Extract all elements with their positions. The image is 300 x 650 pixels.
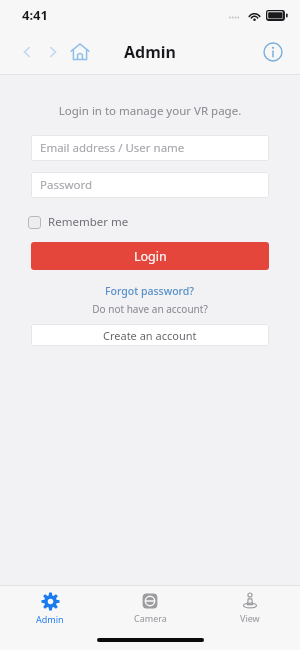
button[interactable]: View	[200, 592, 300, 624]
staticText: Create an account	[103, 328, 197, 343]
staticText: Login in to manage your VR page.	[0, 103, 300, 119]
staticText: Remember me	[48, 214, 129, 230]
staticText: Login	[134, 248, 167, 265]
staticText: Camera	[134, 612, 167, 624]
button[interactable]: Password	[31, 172, 269, 198]
button[interactable]: Back	[14, 39, 40, 65]
button[interactable]: Remember me	[28, 214, 129, 230]
button[interactable]: Admin	[0, 592, 100, 625]
button[interactable]: Info	[260, 39, 286, 65]
button[interactable]: Forward	[40, 39, 66, 65]
staticText: Do not have an account?	[0, 302, 300, 316]
button[interactable]: Create an account	[31, 324, 269, 346]
button[interactable]: Login	[31, 242, 269, 270]
staticText: View	[240, 612, 260, 624]
staticText: 4:41	[22, 6, 48, 24]
staticText: Email address / User name	[40, 140, 185, 156]
staticText: Forgot password?	[105, 284, 195, 298]
staticText: Admin	[36, 613, 64, 625]
staticText: Password	[40, 177, 93, 193]
button[interactable]: Camera	[100, 592, 200, 624]
staticText: Admin	[124, 41, 176, 63]
button[interactable]: Email address / User name	[31, 135, 269, 161]
button[interactable]: Forgot password?	[99, 283, 201, 299]
button[interactable]: Home	[66, 38, 94, 66]
